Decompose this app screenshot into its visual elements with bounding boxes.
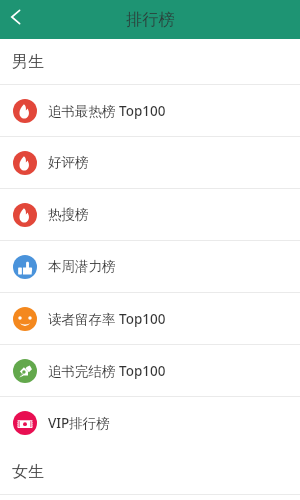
staticText: 本周潜力榜 [48,258,116,275]
button[interactable]: VIP排行榜 [0,397,300,449]
staticText: 男生 [12,52,44,72]
button[interactable]: 追书最热榜 Top100 [0,85,300,137]
button[interactable]: 本周潜力榜 [0,241,300,293]
button[interactable]: 热搜榜 [0,189,300,241]
staticText: 排行榜 [126,9,175,29]
staticText: 读者留存率 Top100 [48,310,166,328]
button[interactable]: 好评榜 [0,137,300,189]
staticText: 热搜榜 [48,206,89,223]
staticText: VIP排行榜 [48,414,110,432]
button[interactable]: 读者留存率 Top100 [0,293,300,345]
button[interactable]: Back [0,0,32,39]
staticText: 追书最热榜 Top100 [48,102,166,120]
button[interactable]: 追书完结榜 Top100 [0,345,300,397]
staticText: 追书完结榜 Top100 [48,362,166,380]
staticText: 女生 [12,462,44,482]
staticText: 好评榜 [48,154,89,171]
